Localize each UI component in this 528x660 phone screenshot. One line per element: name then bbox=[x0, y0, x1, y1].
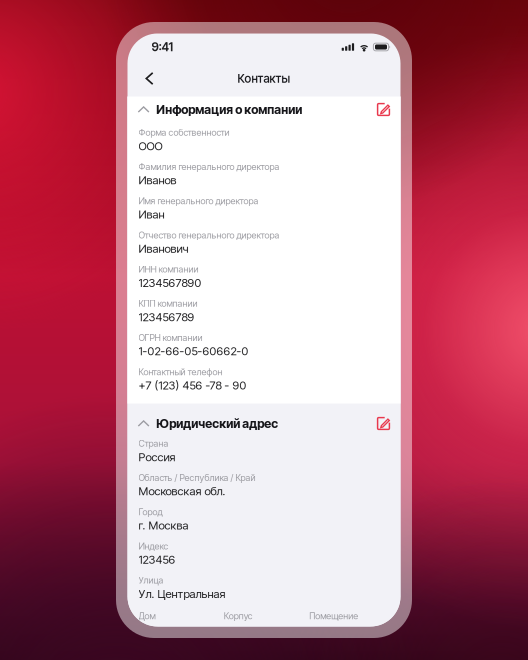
button[interactable]: Edit Юридический адрес bbox=[371, 411, 395, 435]
staticText: Отчество генерального директора bbox=[138, 230, 279, 240]
staticText: Контактный телефон bbox=[138, 367, 222, 377]
staticText: 123456789 bbox=[138, 310, 194, 324]
staticText: г. Москва bbox=[138, 519, 188, 532]
staticText: 9:41 bbox=[151, 40, 173, 54]
staticText: Контакты bbox=[237, 72, 290, 85]
staticText: Дом bbox=[138, 610, 155, 621]
staticText: Юридический адрес bbox=[156, 416, 278, 431]
staticText: Помещение bbox=[309, 610, 358, 621]
staticText: Область / Республика / Край bbox=[138, 472, 255, 483]
staticText: Фамилия генерального директора bbox=[138, 161, 279, 172]
staticText: Индекс bbox=[138, 541, 168, 551]
button[interactable]: Back bbox=[136, 65, 162, 91]
staticText: Город bbox=[138, 507, 162, 517]
staticText: Информация о компании bbox=[156, 102, 302, 117]
staticText: Корпус bbox=[224, 610, 253, 621]
staticText: Иванович bbox=[138, 242, 188, 255]
staticText: Иванов bbox=[138, 173, 176, 187]
staticText: ООО bbox=[138, 139, 162, 153]
staticText: Улица bbox=[138, 575, 163, 586]
staticText: ОГРН компании bbox=[138, 332, 202, 343]
staticText: 123456 bbox=[138, 553, 175, 566]
staticText: ИНН компании bbox=[138, 264, 198, 275]
staticText: Страна bbox=[138, 438, 168, 449]
staticText: Московская обл. bbox=[138, 484, 225, 498]
staticText: КПП компании bbox=[138, 298, 197, 309]
staticText: 1234567890 bbox=[138, 276, 201, 289]
staticText: +7 (123) 456 -78 - 90 bbox=[138, 379, 246, 392]
staticText: Россия bbox=[138, 450, 175, 464]
staticText: Имя генерального директора bbox=[138, 196, 258, 206]
staticText: 1-02-66-05-60662-0 bbox=[138, 344, 248, 358]
staticText: Ул. Центральная bbox=[138, 587, 225, 600]
staticText: Форма собственности bbox=[138, 127, 229, 138]
staticText: Иван bbox=[138, 208, 164, 221]
button[interactable]: Edit Информация о компании bbox=[371, 97, 395, 121]
